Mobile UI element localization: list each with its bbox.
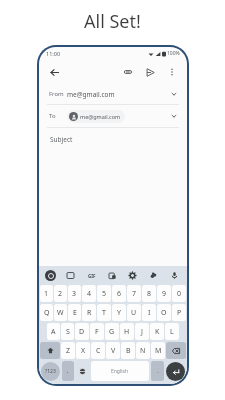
button[interactable]: H [120, 323, 134, 340]
button[interactable]: 7 [127, 285, 141, 302]
button[interactable]: J [135, 323, 149, 340]
button[interactable]: U [127, 304, 141, 321]
staticText: G [109, 327, 115, 337]
staticText: 100% [167, 50, 180, 57]
button[interactable]: Back [47, 65, 61, 79]
button[interactable]: 4 [82, 285, 96, 302]
button[interactable]: T [97, 304, 111, 321]
button[interactable]: N [136, 342, 150, 359]
button[interactable]: L [165, 323, 179, 340]
button[interactable]: Google search [45, 270, 56, 281]
staticText: E [73, 308, 77, 318]
staticText: N [140, 346, 146, 356]
staticText: A [51, 327, 56, 337]
button[interactable]: Send [143, 65, 157, 79]
button[interactable]: F [90, 323, 104, 340]
staticText: T [102, 308, 106, 318]
button[interactable]: V [106, 342, 120, 359]
staticText: 11:00 [46, 50, 61, 57]
staticText: 9 [162, 289, 167, 299]
button[interactable]: 6 [112, 285, 126, 302]
button[interactable]: To [49, 105, 177, 127]
button[interactable]: C [91, 342, 105, 359]
staticText: U [131, 308, 137, 318]
staticText: M [155, 346, 162, 356]
button[interactable]: Attach file [121, 65, 135, 79]
staticText: 5 [102, 289, 107, 299]
staticText: 8 [147, 289, 152, 299]
button[interactable]: From [49, 84, 177, 104]
button[interactable]: 9 [157, 285, 171, 302]
staticText: me@gmail.com [80, 113, 121, 120]
staticText: All Set! [84, 9, 141, 34]
button[interactable]: B [121, 342, 135, 359]
staticText: 6 [117, 289, 122, 299]
button[interactable]: O [157, 304, 171, 321]
staticText: me@gmail.com [67, 90, 115, 99]
button[interactable]: Q [40, 304, 53, 321]
staticText: , [67, 367, 69, 375]
staticText: K [155, 327, 160, 337]
button[interactable]: Clipboard [106, 269, 119, 282]
button[interactable]: K [150, 323, 164, 340]
button[interactable]: Enter [166, 362, 185, 381]
button[interactable]: 3 [68, 285, 81, 302]
button[interactable]: D [75, 323, 89, 340]
button[interactable]: 1 [40, 285, 53, 302]
button[interactable]: X [76, 342, 90, 359]
staticText: English [111, 368, 129, 375]
button[interactable]: M [151, 342, 165, 359]
staticText: ?123 [45, 368, 56, 375]
staticText: H [124, 327, 130, 337]
staticText: Q [44, 308, 50, 318]
button[interactable]: 2 [54, 285, 67, 302]
button[interactable]: Shift [40, 342, 60, 359]
button[interactable]: Comma [62, 361, 74, 381]
button[interactable]: Voice input [168, 269, 181, 282]
button[interactable]: A [47, 323, 60, 340]
staticText: 2 [58, 289, 63, 299]
button[interactable]: Stickers [64, 269, 77, 282]
button[interactable]: Z [61, 342, 75, 359]
button[interactable]: Y [112, 304, 126, 321]
staticText: B [126, 346, 131, 356]
staticText: C [96, 346, 101, 356]
staticText: I [148, 308, 151, 318]
staticText: 7 [132, 289, 137, 299]
button[interactable]: Period [151, 361, 164, 381]
staticText: 3 [72, 289, 77, 299]
button[interactable]: Settings [126, 269, 139, 282]
button[interactable]: G [105, 323, 119, 340]
button[interactable]: 8 [142, 285, 156, 302]
staticText: To [49, 112, 67, 120]
button[interactable]: Backspace [166, 342, 186, 359]
button[interactable]: 5 [97, 285, 111, 302]
button[interactable]: 0 [172, 285, 186, 302]
button[interactable]: W [54, 304, 67, 321]
staticText: GIF [88, 273, 96, 279]
staticText: W [57, 308, 64, 318]
staticText: J [141, 327, 143, 337]
button[interactable]: R [82, 304, 96, 321]
button[interactable]: I [142, 304, 156, 321]
staticText: L [170, 327, 174, 337]
button[interactable]: P [172, 304, 186, 321]
button[interactable]: S [61, 323, 74, 340]
button[interactable]: Theme [147, 269, 160, 282]
button[interactable]: GIF [85, 269, 98, 282]
button[interactable]: Language [76, 361, 89, 381]
button[interactable]: Space [91, 361, 149, 381]
staticText: V [111, 346, 116, 356]
staticText: Y [117, 308, 121, 318]
staticText: Subject [50, 135, 73, 144]
button[interactable]: E [68, 304, 81, 321]
staticText: P [177, 308, 182, 318]
staticText: F [95, 327, 99, 337]
button[interactable]: Symbols [41, 362, 60, 381]
staticText: X [81, 346, 86, 356]
staticText: 0 [177, 289, 182, 299]
button[interactable]: More options [165, 65, 179, 79]
staticText: S [66, 327, 70, 337]
staticText: O [161, 308, 167, 318]
staticText: 1 [44, 289, 49, 299]
